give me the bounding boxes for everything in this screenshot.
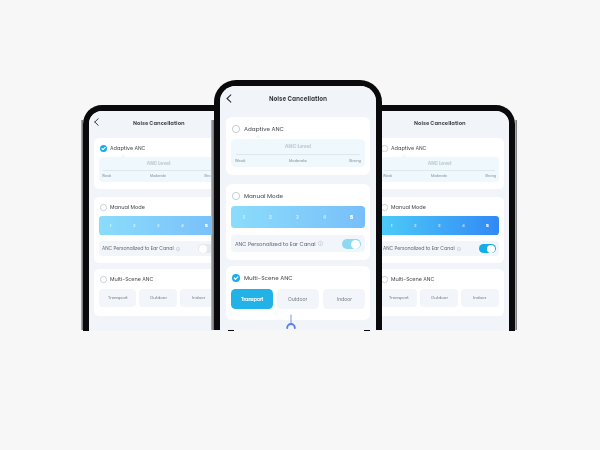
staticText: Strong xyxy=(458,174,496,179)
button[interactable]: Multi-Scene ANC xyxy=(231,273,365,282)
staticText: ANC Level xyxy=(235,143,361,150)
staticText: Adaptive ANC xyxy=(110,145,146,152)
button[interactable]: 2 xyxy=(257,206,284,228)
staticText: Manual Mode xyxy=(110,204,145,211)
staticText: Noise Cancellation xyxy=(133,119,185,126)
button[interactable]: Transport xyxy=(99,289,136,307)
staticText: 4 xyxy=(462,223,465,229)
staticText: 5 xyxy=(205,223,208,229)
button[interactable]: 5 xyxy=(475,216,499,235)
staticText: Weak xyxy=(383,174,420,179)
staticText: Weak xyxy=(235,158,277,163)
staticText: 5 xyxy=(486,223,489,229)
staticText: Indoor xyxy=(337,296,352,303)
button[interactable]: 3 xyxy=(284,206,311,228)
staticText: 1 xyxy=(243,214,245,221)
staticText: Multi-Scene ANC xyxy=(244,274,293,282)
staticText: ANC Personalized to Ear Canal xyxy=(235,240,316,247)
button[interactable]: Indoor xyxy=(461,289,499,307)
staticText: Transport xyxy=(108,295,128,301)
button[interactable]: Transport xyxy=(231,289,273,309)
staticText: Moderate xyxy=(277,158,319,163)
button[interactable]: Adaptive ANC xyxy=(380,144,499,152)
button[interactable]: Back xyxy=(373,117,383,127)
staticText: Multi-Scene ANC xyxy=(110,276,154,283)
staticText: 1 xyxy=(391,223,393,229)
staticText: 2 xyxy=(414,223,417,229)
button[interactable]: 2 xyxy=(122,216,146,235)
staticText: ANC Level xyxy=(383,160,496,166)
button[interactable]: 1 xyxy=(380,216,403,235)
button[interactable]: Toggle ANC personalized to ear canal xyxy=(342,239,361,249)
staticText: Transport xyxy=(389,295,409,301)
button[interactable]: Outdoor xyxy=(139,289,177,307)
staticText: ANC Personalized to Ear Canal xyxy=(383,245,455,252)
button[interactable]: 4 xyxy=(170,216,194,235)
staticText: Manual Mode xyxy=(244,192,284,200)
staticText: Outdoor xyxy=(431,295,448,301)
staticText: 2 xyxy=(269,214,272,221)
staticText: Multi-Scene ANC xyxy=(391,276,435,283)
staticText: ANC Personalized to Ear Canal xyxy=(102,245,174,252)
staticText: Indoor xyxy=(192,295,206,301)
staticText: Outdoor xyxy=(150,295,167,301)
staticText: 2 xyxy=(133,223,136,229)
button[interactable]: Manual Mode xyxy=(99,203,218,211)
staticText: 4 xyxy=(181,223,184,229)
staticText: Manual Mode xyxy=(391,204,426,211)
button[interactable]: Outdoor xyxy=(420,289,458,307)
button[interactable]: ANC Personalized to Ear Canal xyxy=(231,235,365,252)
button[interactable]: Indoor xyxy=(180,289,218,307)
staticText: 3 xyxy=(157,223,160,229)
staticText: Moderate xyxy=(420,174,458,179)
staticText: Moderate xyxy=(139,174,177,179)
button[interactable]: Back xyxy=(92,117,102,127)
staticText: Strong xyxy=(177,174,215,179)
button[interactable]: Adaptive ANC xyxy=(99,144,218,152)
button[interactable]: 1 xyxy=(231,206,257,228)
button[interactable]: 3 xyxy=(146,216,170,235)
button[interactable]: Manual Mode xyxy=(231,191,365,200)
button[interactable]: Multi-Scene ANC xyxy=(99,275,218,283)
button[interactable]: Multi-Scene ANC xyxy=(380,275,499,283)
button[interactable]: Manual Mode xyxy=(380,203,499,211)
staticText: Adaptive ANC xyxy=(244,125,284,133)
button[interactable]: Indoor xyxy=(323,289,365,309)
button[interactable]: Adaptive ANC xyxy=(231,124,365,133)
button[interactable]: Toggle ANC personalized to ear canal xyxy=(198,244,215,253)
button[interactable]: 5 xyxy=(194,216,218,235)
staticText: Noise Cancellation xyxy=(269,95,328,103)
staticText: Strong xyxy=(319,158,361,163)
button[interactable]: ANC Personalized to Ear Canal xyxy=(380,241,499,256)
button[interactable]: Outdoor xyxy=(277,289,319,309)
staticText: 4 xyxy=(323,214,327,221)
staticText: Indoor xyxy=(473,295,487,301)
staticText: 1 xyxy=(110,223,112,229)
button[interactable]: Back xyxy=(224,93,235,104)
staticText: 5 xyxy=(350,214,354,221)
staticText: Weak xyxy=(102,174,139,179)
staticText: Noise Cancellation xyxy=(414,119,466,126)
button[interactable]: 3 xyxy=(427,216,451,235)
staticText: ANC Level xyxy=(102,160,215,166)
staticText: 3 xyxy=(438,223,441,229)
staticText: Adaptive ANC xyxy=(391,145,427,152)
button[interactable]: 4 xyxy=(311,206,338,228)
staticText: Transport xyxy=(241,296,264,303)
button[interactable]: ANC Personalized to Ear Canal xyxy=(99,241,218,256)
staticText: 3 xyxy=(296,214,299,221)
button[interactable]: Transport xyxy=(380,289,417,307)
button[interactable]: 1 xyxy=(99,216,122,235)
staticText: Outdoor xyxy=(288,296,308,303)
button[interactable]: Toggle ANC personalized to ear canal xyxy=(479,244,496,253)
button[interactable]: 5 xyxy=(338,206,365,228)
button[interactable]: 2 xyxy=(403,216,427,235)
button[interactable]: 4 xyxy=(451,216,475,235)
